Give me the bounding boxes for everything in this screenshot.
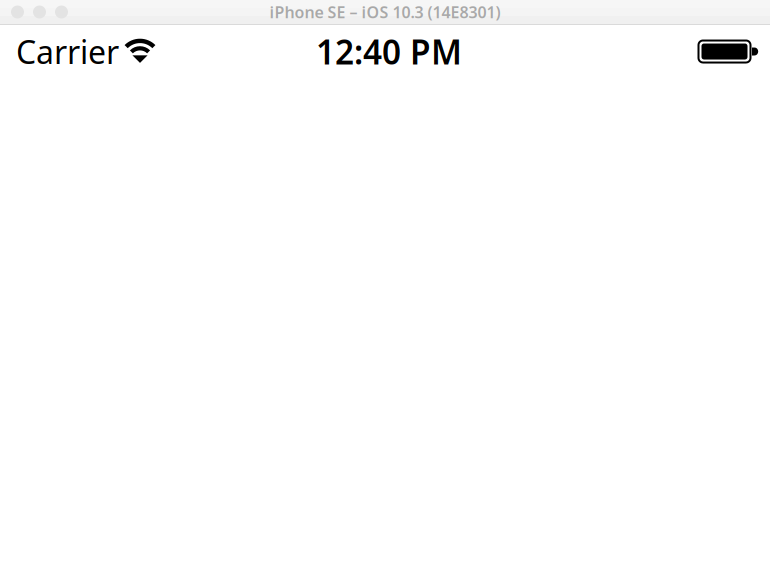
staticText: iPhone SE – iOS 10.3 (14E8301)	[269, 1, 500, 23]
staticText: 12:40 PM	[316, 29, 462, 74]
button[interactable]: Zoom	[55, 5, 68, 18]
button[interactable]: Minimize	[33, 5, 46, 18]
staticText: Carrier	[16, 30, 119, 73]
button[interactable]: Close	[11, 5, 24, 18]
